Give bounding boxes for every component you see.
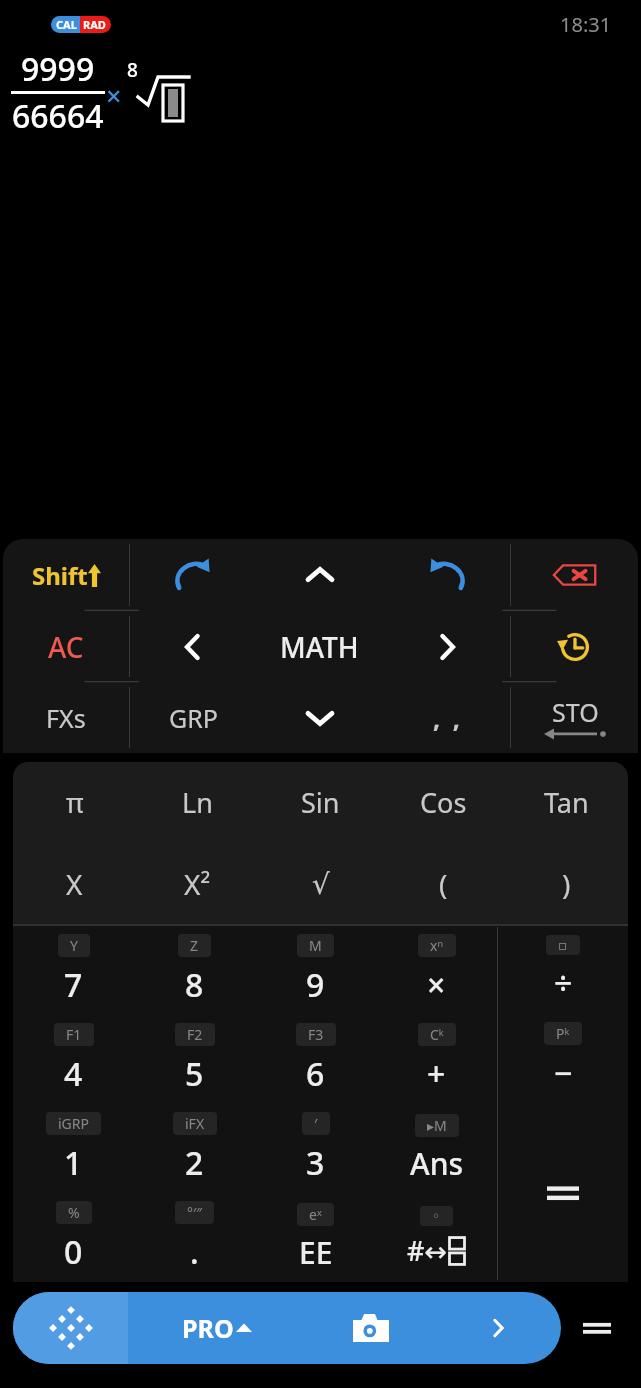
- staticText: X: [66, 865, 83, 903]
- button[interactable]: M: [255, 925, 376, 1015]
- button[interactable]: GRP: [130, 682, 256, 753]
- staticText: ′: [314, 1114, 318, 1133]
- button[interactable]: X: [13, 843, 136, 925]
- staticText: STO: [552, 695, 599, 729]
- button[interactable]: Pᵏ: [498, 1014, 628, 1103]
- staticText: %: [68, 1203, 80, 1222]
- button[interactable]: iFX: [134, 1104, 255, 1193]
- staticText: ×: [106, 77, 122, 114]
- button[interactable]: eˣ: [255, 1193, 376, 1282]
- staticText: eˣ: [309, 1205, 322, 1224]
- staticText: ◦: [432, 1208, 441, 1224]
- staticText: MATH: [280, 628, 359, 666]
- staticText: 7: [64, 963, 83, 1007]
- button[interactable]: Menu: [561, 1292, 633, 1364]
- button[interactable]: Apps: [13, 1292, 128, 1364]
- staticText: ÷: [554, 961, 573, 1005]
- button[interactable]: Delete: [511, 539, 638, 611]
- button[interactable]: Redo: [130, 539, 256, 611]
- button[interactable]: F1: [13, 1015, 134, 1104]
- staticText: 66664: [12, 94, 104, 138]
- staticText: F2: [187, 1025, 203, 1044]
- button[interactable]: √: [259, 843, 382, 925]
- staticText: F1: [66, 1025, 82, 1044]
- staticText: π: [66, 784, 84, 821]
- button[interactable]: Cursor up: [256, 539, 383, 611]
- staticText: iGRP: [58, 1114, 89, 1133]
- button[interactable]: Cursor down: [256, 682, 383, 753]
- staticText: Ln: [182, 784, 213, 821]
- staticText: °′″: [187, 1203, 202, 1222]
- button[interactable]: STO: [511, 682, 638, 753]
- button[interactable]: ▫: [498, 925, 628, 1014]
- staticText: 3: [306, 1141, 325, 1185]
- button[interactable]: Sin: [259, 762, 382, 843]
- button[interactable]: %: [13, 1193, 134, 1282]
- staticText: GRP: [169, 701, 218, 735]
- staticText: iFX: [185, 1114, 205, 1133]
- staticText: ): [562, 865, 571, 903]
- staticText: Cᵏ: [430, 1025, 444, 1044]
- staticText: M: [309, 936, 322, 955]
- button[interactable]: Shift: [3, 539, 129, 611]
- staticText: F3: [308, 1025, 324, 1044]
- button[interactable]: F3: [255, 1015, 376, 1104]
- staticText: 9999: [21, 47, 95, 91]
- staticText: Tan: [544, 784, 589, 821]
- staticText: (: [439, 865, 448, 903]
- button[interactable]: Camera: [307, 1292, 434, 1364]
- staticText: AC: [48, 628, 84, 666]
- button[interactable]: Ln: [136, 762, 259, 843]
- staticText: .: [190, 1230, 199, 1274]
- staticText: 8: [127, 57, 138, 83]
- button[interactable]: ▸M: [376, 1104, 497, 1193]
- button[interactable]: Cursor left: [130, 611, 256, 682]
- staticText: Y: [70, 936, 78, 955]
- staticText: Z: [190, 936, 199, 955]
- button[interactable]: xⁿ: [376, 925, 497, 1015]
- button[interactable]: History: [511, 611, 638, 682]
- staticText: FXs: [46, 701, 86, 735]
- staticText: ×: [427, 963, 446, 1007]
- button[interactable]: Z: [134, 925, 255, 1015]
- staticText: 6: [306, 1052, 325, 1096]
- button[interactable]: Cᵏ: [376, 1015, 497, 1104]
- button[interactable]: (: [382, 843, 505, 925]
- staticText: #↔: [407, 1232, 448, 1269]
- staticText: CAL: [56, 17, 77, 32]
- staticText: Sin: [301, 784, 340, 821]
- staticText: 18:31: [560, 11, 612, 38]
- button[interactable]: FXs: [3, 682, 129, 753]
- button[interactable]: Y: [13, 925, 134, 1015]
- button[interactable]: ): [505, 843, 628, 925]
- button[interactable]: X²: [136, 843, 259, 925]
- staticText: +: [427, 1052, 446, 1096]
- staticText: ▫: [558, 937, 568, 953]
- button[interactable]: Next: [434, 1292, 561, 1364]
- button[interactable]: AC: [3, 611, 129, 682]
- button[interactable]: iGRP: [13, 1104, 134, 1193]
- staticText: ▸M: [427, 1116, 447, 1135]
- button[interactable]: F2: [134, 1015, 255, 1104]
- button[interactable]: Equals: [498, 1103, 628, 1282]
- button[interactable]: π: [13, 762, 136, 843]
- button[interactable]: Tan: [505, 762, 628, 843]
- button[interactable]: MATH: [256, 611, 383, 682]
- button[interactable]: , ,: [383, 682, 510, 753]
- button[interactable]: °′″: [134, 1193, 255, 1282]
- button[interactable]: CAL: [51, 16, 111, 33]
- button[interactable]: ◦: [376, 1193, 497, 1282]
- staticText: Cos: [420, 784, 467, 821]
- button[interactable]: Cos: [382, 762, 505, 843]
- staticText: 2: [185, 1141, 204, 1185]
- button[interactable]: ′: [255, 1104, 376, 1193]
- staticText: PRO: [182, 1311, 234, 1345]
- staticText: , ,: [433, 701, 460, 735]
- staticText: Shift: [32, 559, 88, 592]
- button[interactable]: Undo: [383, 539, 510, 611]
- staticText: X²: [184, 865, 211, 903]
- staticText: EE: [299, 1232, 333, 1273]
- staticText: 4: [64, 1052, 83, 1096]
- button[interactable]: PRO: [128, 1292, 307, 1364]
- button[interactable]: Cursor right: [383, 611, 510, 682]
